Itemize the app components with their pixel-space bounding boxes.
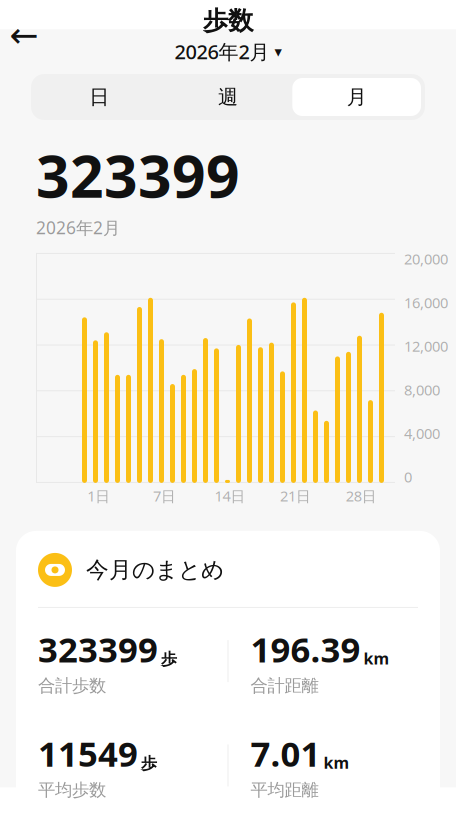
staticText: 16,000 — [404, 293, 448, 312]
staticText: 歩 — [141, 754, 157, 773]
staticText: km — [323, 752, 349, 773]
button[interactable]: 週 — [164, 78, 292, 116]
staticText: 11549 — [38, 730, 138, 776]
button[interactable]: 戻る — [0, 13, 48, 57]
button[interactable]: 日 — [35, 78, 164, 116]
staticText: 21日 — [280, 486, 311, 506]
staticText: 28日 — [346, 486, 377, 506]
staticText: 今月のまとめ — [86, 556, 224, 584]
staticText: 2026年2月 — [174, 38, 269, 65]
staticText: 歩数 — [203, 5, 253, 36]
staticText: 2026年2月 — [36, 216, 120, 239]
staticText: 合計距離 — [250, 675, 318, 696]
staticText: 0 — [404, 467, 412, 487]
staticText: 7日 — [153, 486, 176, 506]
staticText: 14日 — [214, 486, 245, 506]
staticText: 7.01 — [250, 730, 320, 776]
staticText: 323399 — [38, 626, 158, 672]
staticText: ← — [9, 15, 38, 55]
staticText: 月 — [347, 85, 367, 109]
staticText: 日 — [89, 85, 109, 109]
staticText: 歩 — [161, 649, 177, 669]
staticText: km — [363, 648, 389, 669]
button[interactable]: 月 — [292, 78, 421, 116]
staticText: 平均距離 — [250, 779, 318, 801]
staticText: 4,000 — [404, 424, 440, 443]
staticText: 196.39 — [250, 626, 360, 672]
staticText: 合計歩数 — [38, 675, 106, 696]
staticText: 1日 — [87, 486, 110, 506]
staticText: 週 — [218, 85, 238, 109]
staticText: ▾ — [274, 43, 281, 60]
staticText: 20,000 — [404, 249, 448, 269]
button[interactable]: 2026年2月 — [174, 38, 281, 65]
staticText: 12,000 — [404, 336, 448, 356]
staticText: 平均歩数 — [38, 779, 106, 801]
staticText: 323399 — [36, 136, 240, 214]
staticText: 8,000 — [404, 380, 440, 399]
